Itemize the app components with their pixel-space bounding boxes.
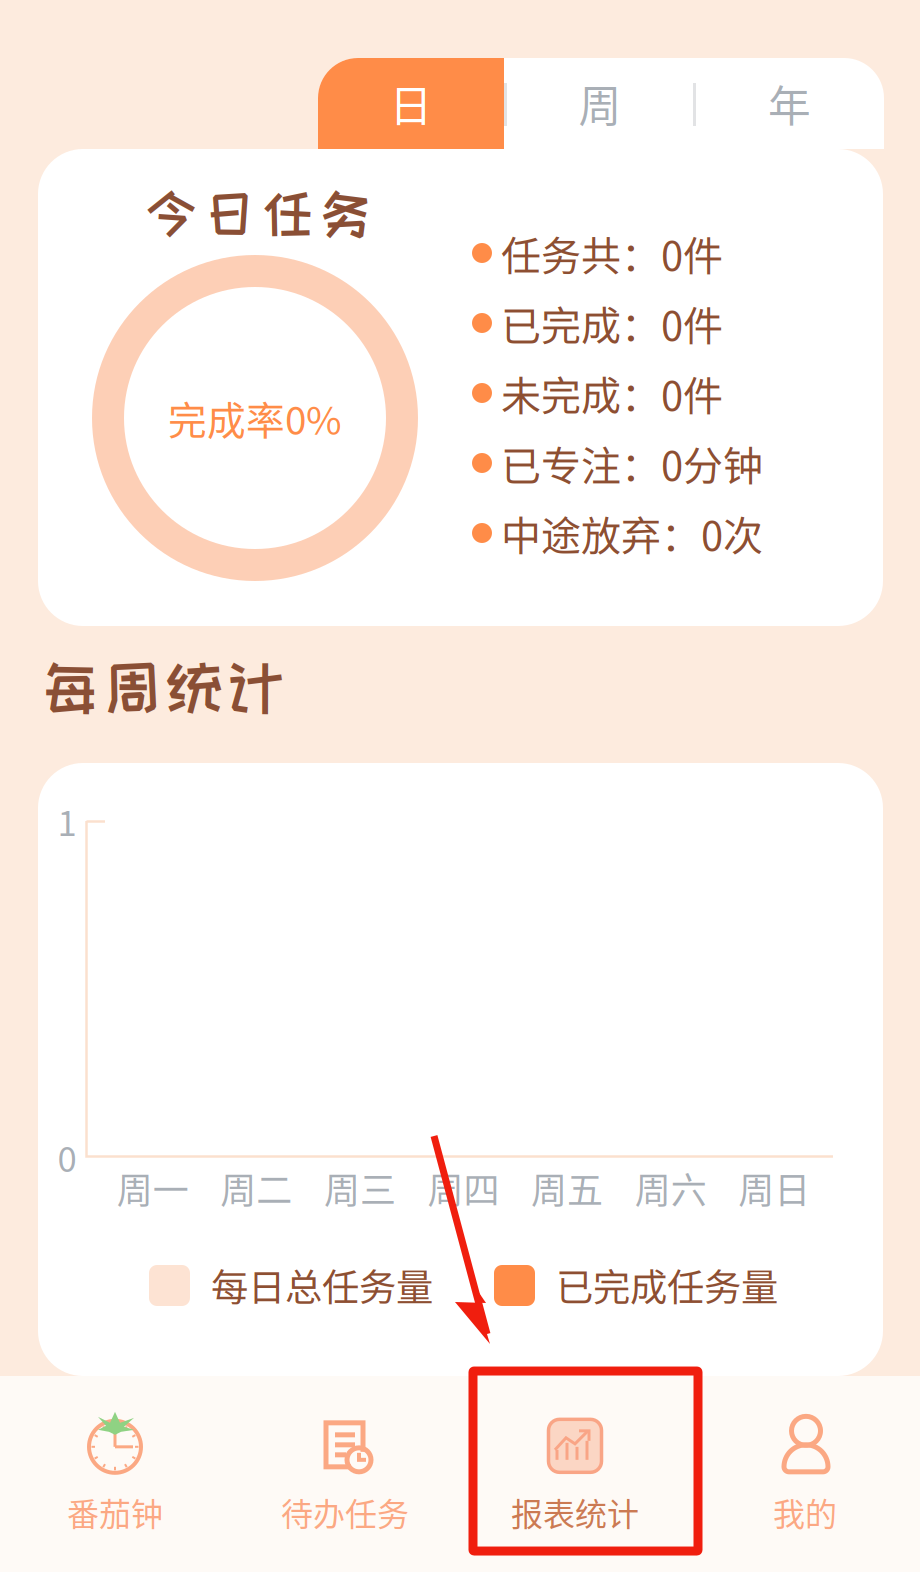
staticText: 每周统计 (42, 656, 284, 718)
staticText: 周一 (117, 1162, 189, 1214)
staticText: 中途放弃： (501, 504, 701, 562)
staticText: 未完成： (501, 364, 661, 422)
button[interactable]: 周 (505, 58, 695, 149)
staticText: 周 (578, 73, 621, 134)
staticText: 周二 (220, 1162, 292, 1214)
button[interactable]: 报表统计 (460, 1413, 690, 1535)
staticText: 完成率0% (168, 390, 342, 446)
staticText: 周五 (531, 1162, 603, 1214)
staticText: 0件 (661, 224, 723, 282)
staticText: 已专注： (501, 434, 661, 492)
staticText: 0件 (661, 364, 723, 422)
staticText: 我的 (773, 1489, 837, 1535)
staticText: 已完成： (501, 294, 661, 352)
button[interactable]: 年 (695, 58, 884, 149)
staticText: 周日 (738, 1162, 810, 1214)
staticText: 0件 (661, 294, 723, 352)
staticText: 报表统计 (511, 1489, 639, 1535)
staticText: 0分钟 (661, 434, 763, 492)
staticText: 0 (57, 1132, 76, 1182)
staticText: 今日任务 (146, 186, 370, 240)
staticText: 任务共： (501, 224, 661, 282)
staticText: 周六 (635, 1162, 707, 1214)
staticText: 日 (389, 73, 432, 134)
staticText: 年 (768, 73, 811, 134)
staticText: 番茄钟 (67, 1489, 163, 1535)
button[interactable]: 我的 (690, 1413, 920, 1535)
staticText: 0次 (701, 504, 763, 562)
staticText: 周四 (427, 1162, 499, 1214)
staticText: 周三 (324, 1162, 396, 1214)
button[interactable]: 待办任务 (230, 1413, 460, 1535)
staticText: 每日总任务量 (211, 1258, 433, 1312)
button[interactable]: 番茄钟 (0, 1413, 230, 1535)
staticText: 1 (57, 796, 76, 846)
staticText: 待办任务 (281, 1489, 409, 1535)
button[interactable]: 日 (318, 58, 504, 149)
staticText: 已完成任务量 (556, 1258, 778, 1312)
